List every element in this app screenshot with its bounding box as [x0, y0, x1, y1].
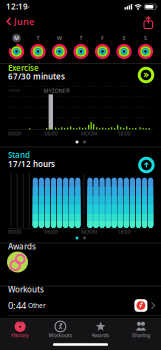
- staticText: 00:00: [8, 130, 21, 137]
- button[interactable]: June: [6, 14, 161, 28]
- staticText: Awards: [8, 241, 36, 252]
- button[interactable]: T: [70, 30, 92, 63]
- staticText: Exercise: [8, 63, 39, 73]
- button[interactable]: T: [27, 30, 49, 63]
- button[interactable]: History: [1, 318, 39, 340]
- staticText: NOON: [81, 228, 97, 235]
- staticText: M: [14, 34, 19, 42]
- staticText: S: [144, 34, 147, 42]
- staticText: June: [14, 15, 34, 28]
- staticText: F: [101, 34, 104, 42]
- staticText: 06:00: [44, 130, 57, 137]
- button[interactable]: 0:44: [0, 297, 161, 314]
- staticText: 18:00: [117, 228, 130, 235]
- staticText: Other: [26, 301, 46, 310]
- staticText: NOON: [81, 130, 97, 137]
- button[interactable]: [138, 67, 154, 83]
- button[interactable]: Awards: [82, 318, 120, 340]
- staticText: 17/12 hours: [8, 158, 55, 169]
- staticText: 18:00: [117, 130, 130, 137]
- button[interactable]: S: [135, 30, 156, 63]
- staticText: Workouts: [48, 332, 72, 339]
- staticText: 06:00: [44, 228, 57, 235]
- staticText: T: [36, 34, 39, 42]
- staticText: Workouts: [8, 284, 44, 295]
- staticText: 15MIN: [8, 88, 20, 93]
- staticText: Stand: [8, 150, 30, 160]
- staticText: Sharing: [132, 332, 150, 339]
- staticText: W: [57, 34, 62, 42]
- staticText: History: [11, 332, 29, 339]
- staticText: MYZONE®: [43, 87, 69, 94]
- staticText: 67/30 minutes: [8, 71, 65, 82]
- button[interactable]: [143, 16, 153, 29]
- staticText: Awards: [92, 332, 110, 339]
- staticText: 12:19: [6, 1, 28, 12]
- staticText: 0:44: [8, 299, 26, 312]
- staticText: T: [79, 34, 82, 42]
- button[interactable]: Sharing: [122, 318, 160, 340]
- staticText: S: [122, 34, 125, 42]
- button[interactable]: M: [6, 30, 27, 63]
- button[interactable]: F: [92, 30, 113, 63]
- button[interactable]: [138, 157, 155, 173]
- staticText: 00:00: [8, 228, 21, 235]
- button[interactable]: W: [49, 30, 70, 63]
- button[interactable]: [5, 249, 30, 274]
- button[interactable]: Workouts: [41, 318, 79, 340]
- button[interactable]: S: [113, 30, 135, 63]
